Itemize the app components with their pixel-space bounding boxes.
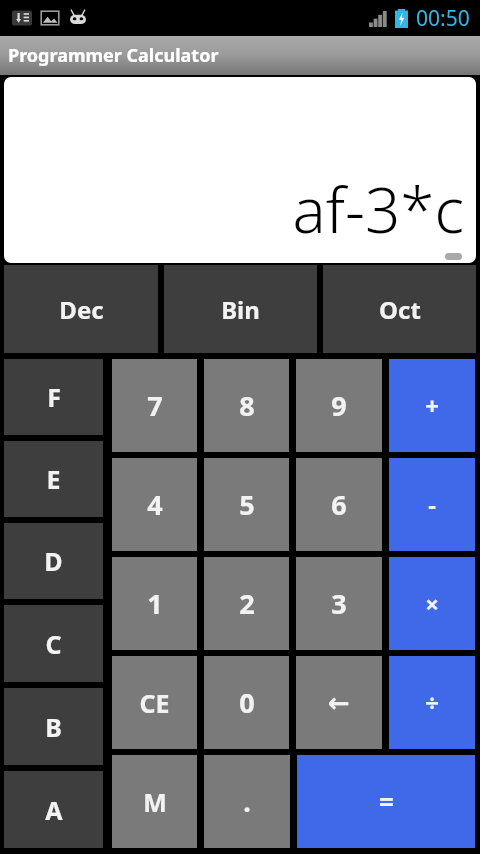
button[interactable]: Dec [4, 265, 158, 353]
button[interactable]: 1 [112, 557, 197, 650]
staticText: M [143, 785, 167, 819]
button[interactable]: F [4, 359, 103, 435]
staticText: × [425, 587, 439, 620]
staticText: 0 [239, 684, 255, 721]
button[interactable]: . [204, 755, 290, 848]
staticText: - [428, 488, 436, 521]
staticText: B [45, 710, 62, 744]
button[interactable]: Equals [297, 755, 475, 848]
button[interactable]: Multiply [389, 557, 475, 650]
staticText: 7 [147, 387, 163, 424]
staticText: af-3*c [292, 167, 464, 251]
staticText: Oct [379, 293, 421, 326]
button[interactable]: 4 [112, 458, 197, 551]
button[interactable]: M [112, 755, 197, 848]
button[interactable]: Bin [164, 265, 317, 353]
staticText: CE [139, 686, 170, 720]
staticText: Bin [221, 293, 260, 326]
staticText: A [45, 793, 63, 827]
staticText: ← [328, 688, 350, 718]
button[interactable]: 6 [296, 458, 382, 551]
button[interactable]: A [4, 771, 103, 848]
button[interactable]: Plus [389, 359, 475, 452]
staticText: F [47, 380, 61, 414]
button[interactable]: Oct [323, 265, 476, 353]
staticText: 2 [239, 585, 255, 622]
staticText: Programmer Calculator [8, 43, 219, 68]
staticText: 6 [331, 486, 347, 523]
button[interactable]: CE [112, 656, 197, 749]
button[interactable]: 0 [204, 656, 289, 749]
button[interactable]: 5 [204, 458, 289, 551]
button[interactable]: 2 [204, 557, 289, 650]
staticText: 1 [147, 585, 163, 622]
staticText: D [44, 544, 63, 578]
button[interactable]: Minus [389, 458, 475, 551]
button[interactable]: C [4, 605, 103, 682]
button[interactable]: B [4, 688, 103, 765]
staticText: 4 [147, 486, 163, 523]
button[interactable]: E [4, 441, 103, 517]
button[interactable]: Divide [389, 656, 475, 749]
staticText: = [379, 784, 394, 819]
button[interactable]: af-3*c [4, 77, 476, 263]
staticText: Dec [59, 293, 104, 326]
staticText: 9 [331, 387, 347, 424]
staticText: 3 [331, 585, 347, 622]
staticText: 8 [239, 387, 255, 424]
button[interactable]: 3 [296, 557, 382, 650]
staticText: . [243, 783, 251, 820]
button[interactable]: 8 [204, 359, 289, 452]
staticText: ÷ [425, 686, 439, 719]
staticText: + [425, 389, 439, 422]
staticText: E [46, 462, 61, 496]
button[interactable]: D [4, 523, 103, 599]
button[interactable]: Backspace [296, 656, 382, 749]
staticText: C [45, 627, 62, 661]
button[interactable]: 9 [296, 359, 382, 452]
button[interactable]: 7 [112, 359, 197, 452]
staticText: 00:50 [416, 4, 470, 33]
staticText: 5 [239, 486, 255, 523]
